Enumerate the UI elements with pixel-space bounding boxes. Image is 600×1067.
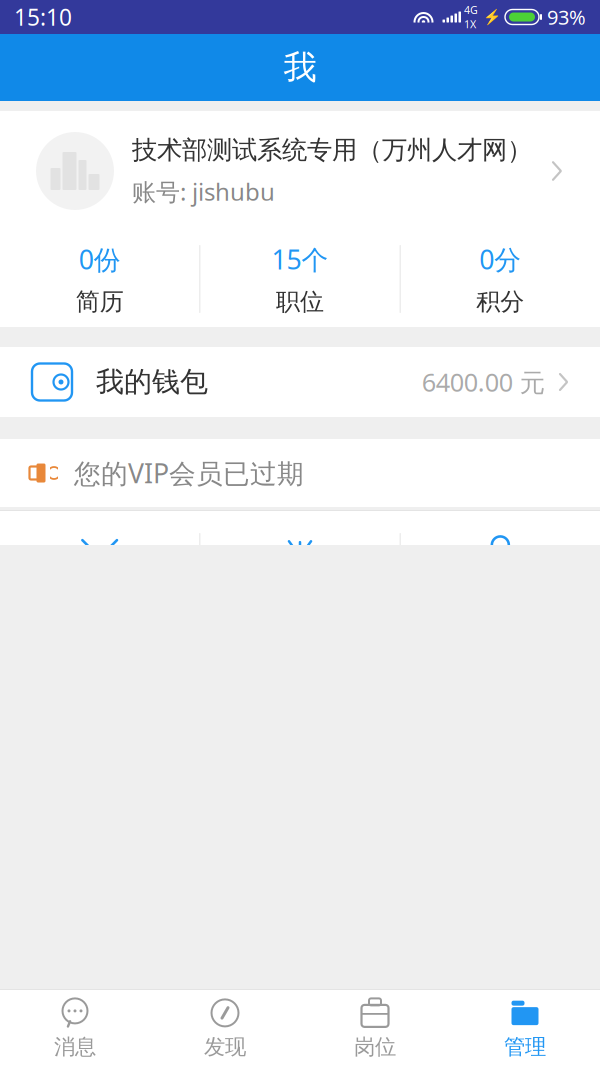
button[interactable]: 消息 <box>0 990 150 1067</box>
staticText: 93% <box>547 4 586 30</box>
staticText: 0分 <box>479 242 521 277</box>
button[interactable]: 15个 <box>200 240 400 318</box>
button[interactable]: 岗位 <box>300 990 450 1067</box>
button[interactable]: 主页 <box>0 511 199 639</box>
staticText: 4G <box>464 3 478 17</box>
staticText: 1X <box>464 17 476 31</box>
staticText: 职位 <box>276 287 324 316</box>
button[interactable]: 发现 <box>150 990 300 1067</box>
staticText: 管理 <box>504 1034 546 1060</box>
staticText: 0份 <box>79 242 121 277</box>
staticText: 消息 <box>54 1034 96 1060</box>
button[interactable]: 收藏 <box>200 511 400 639</box>
staticText: ⚡ <box>483 9 501 25</box>
staticText: 15:10 <box>14 2 72 32</box>
staticText: 我 <box>283 47 316 88</box>
staticText: 账号: jishubu <box>132 176 275 207</box>
staticText: 简历 <box>76 287 124 316</box>
button[interactable]: 0分 <box>401 240 600 318</box>
button[interactable]: 管理 <box>450 990 600 1067</box>
staticText: 积分 <box>476 287 524 316</box>
staticText: 我的钱包 <box>96 365 208 399</box>
button[interactable]: 您的VIP会员已过期 <box>0 439 600 507</box>
button[interactable]: 访客 <box>401 511 600 639</box>
button[interactable]: 0份 <box>0 240 199 318</box>
staticText: 岗位 <box>354 1034 396 1060</box>
staticText: 15个 <box>271 242 328 277</box>
button[interactable]: 我的钱包 <box>0 347 600 417</box>
button[interactable]: 技术部测试系统专用（万州人才网） <box>0 111 600 231</box>
staticText: 技术部测试系统专用（万州人才网） <box>132 134 532 166</box>
staticText: 发现 <box>204 1034 246 1060</box>
staticText: 您的VIP会员已过期 <box>74 455 304 491</box>
staticText: 6400.00 元 <box>422 365 545 399</box>
